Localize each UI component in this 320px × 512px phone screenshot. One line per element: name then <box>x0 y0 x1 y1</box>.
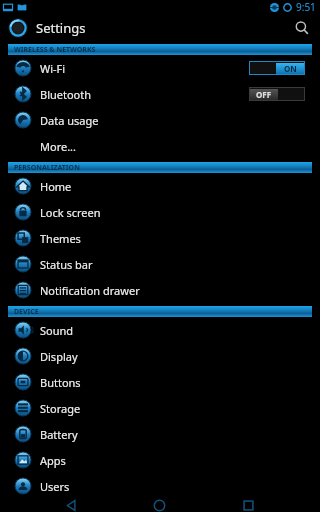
staticText: Sound <box>40 323 74 338</box>
staticText: Display <box>40 349 78 364</box>
button[interactable]: Notification drawer <box>0 277 320 303</box>
staticText: Home <box>40 179 72 194</box>
button[interactable]: Home <box>142 499 176 512</box>
staticText: Battery <box>40 427 78 442</box>
staticText: DEVICE <box>14 307 39 317</box>
staticText: Wi-Fi <box>40 61 66 76</box>
staticText: Buttons <box>40 375 81 390</box>
staticText: Themes <box>40 231 81 246</box>
button[interactable]: Battery <box>0 421 320 447</box>
staticText: More... <box>40 139 77 154</box>
staticText: Settings <box>36 19 86 37</box>
staticText: Users <box>40 479 70 494</box>
staticText: OFF <box>256 89 272 100</box>
staticText: 9:51 <box>296 0 316 14</box>
button[interactable]: Data usage <box>0 107 320 133</box>
staticText: Storage <box>40 401 81 416</box>
staticText: Status bar <box>40 257 93 272</box>
button[interactable]: Home <box>0 173 320 199</box>
button[interactable]: Themes <box>0 225 320 251</box>
staticText: ON <box>284 63 297 74</box>
button[interactable]: Status bar <box>0 251 320 277</box>
button[interactable]: Lock screen <box>0 199 320 225</box>
staticText: WIRELESS & NETWORKS <box>14 45 96 55</box>
staticText: PERSONALIZATION <box>14 163 80 173</box>
staticText: Data usage <box>40 113 99 128</box>
button[interactable]: ON <box>249 61 305 75</box>
staticText: Apps <box>40 453 66 468</box>
button[interactable]: Buttons <box>0 369 320 395</box>
button[interactable]: Search <box>290 16 314 40</box>
button[interactable]: Bluetooth <box>0 81 320 107</box>
button[interactable]: Apps <box>0 447 320 473</box>
button[interactable]: Storage <box>0 395 320 421</box>
button[interactable]: Back <box>54 499 88 512</box>
button[interactable]: Display <box>0 343 320 369</box>
staticText: Lock screen <box>40 205 101 220</box>
staticText: Notification drawer <box>40 283 140 298</box>
button[interactable]: Recent apps <box>231 499 265 512</box>
staticText: Bluetooth <box>40 87 92 102</box>
button[interactable]: OFF <box>249 87 305 101</box>
button[interactable]: Sound <box>0 317 320 343</box>
button[interactable]: Wi-Fi <box>0 55 320 81</box>
button[interactable]: Users <box>0 473 320 499</box>
button[interactable]: More... <box>0 133 320 159</box>
